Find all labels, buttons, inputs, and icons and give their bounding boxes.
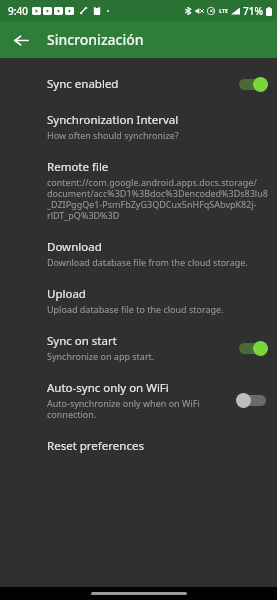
- staticText: Auto-sync only on WiFi: [47, 380, 169, 396]
- button[interactable]: Sync on start: [0, 324, 277, 371]
- staticText: Sincronización: [47, 30, 144, 49]
- staticText: How often should synchronize?: [47, 129, 179, 141]
- button[interactable]: Toggle on: [235, 74, 269, 94]
- staticText: Upload: [47, 286, 86, 302]
- staticText: Sync on start: [47, 333, 117, 349]
- staticText: Synchronization Interval: [47, 112, 179, 128]
- button[interactable]: Upload: [0, 277, 277, 324]
- staticText: content://com.google.android.apps.docs.s…: [47, 176, 269, 221]
- staticText: 9:40: [8, 4, 28, 18]
- staticText: 71%: [243, 4, 263, 18]
- staticText: Download database file from the cloud st…: [47, 256, 248, 268]
- staticText: Auto-synchronize only when on WiFi conne…: [47, 397, 229, 420]
- staticText: Synchronize on app start.: [47, 350, 155, 362]
- button[interactable]: Auto-sync only on WiFi: [0, 371, 277, 429]
- staticText: Remote file: [47, 159, 109, 175]
- button[interactable]: Synchronization Interval: [0, 103, 277, 150]
- staticText: LTE: [219, 8, 228, 15]
- button[interactable]: Sync enabled: [0, 65, 277, 103]
- button[interactable]: Download: [0, 230, 277, 277]
- button[interactable]: Toggle off: [235, 390, 269, 410]
- staticText: Upload database file to the cloud storag…: [47, 303, 224, 315]
- staticText: Download: [47, 239, 102, 255]
- staticText: Reset preferences: [47, 438, 144, 454]
- button[interactable]: Toggle on: [235, 338, 269, 358]
- staticText: Sync enabled: [47, 76, 119, 92]
- button[interactable]: Reset preferences: [0, 429, 277, 463]
- button[interactable]: Remote file: [0, 150, 277, 230]
- button[interactable]: Back: [5, 24, 37, 56]
